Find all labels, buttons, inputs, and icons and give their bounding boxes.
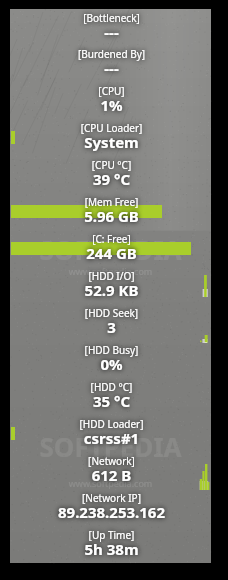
staticText: 52.9 KB <box>11 280 212 300</box>
staticText: SOFTPEDIA <box>10 429 211 464</box>
staticText: [HDD I/O] <box>11 269 212 283</box>
staticText: [CPU] <box>11 84 212 98</box>
staticText: 3 <box>11 317 212 337</box>
staticText: [Mem Free] <box>11 195 212 209</box>
staticText: [CPU °C] <box>11 158 212 172</box>
staticText: [CPU Loader] <box>11 121 212 135</box>
staticText: 89.238.253.162 <box>11 502 212 522</box>
staticText: [Bottleneck] <box>11 11 212 25</box>
staticText: [Network IP] <box>11 491 212 505</box>
staticText: www.softpedia.com <box>10 477 211 489</box>
staticText: 39 °C <box>11 169 212 189</box>
staticText: System <box>11 132 212 152</box>
staticText: [Network] <box>11 454 212 468</box>
staticText: 5.96 GB <box>11 206 212 226</box>
staticText: --- <box>11 22 212 42</box>
staticText: [C: Free] <box>11 232 212 246</box>
staticText: 612 B <box>11 465 212 485</box>
staticText: [HDD Loader] <box>11 417 212 431</box>
staticText: [Burdened By] <box>11 47 212 61</box>
button[interactable]: SOFTPEDIA <box>10 9 211 563</box>
staticText: [HDD °C] <box>11 380 212 394</box>
staticText: [HDD Busy] <box>11 343 212 357</box>
staticText: [HDD Seek] <box>11 306 212 320</box>
staticText: www.softpedia.com <box>10 265 211 277</box>
staticText: 0% <box>11 354 212 374</box>
staticText: SOFTPEDIA <box>10 232 211 267</box>
staticText: 35 °C <box>11 391 212 411</box>
staticText: 244 GB <box>11 243 212 263</box>
staticText: 1% <box>11 95 212 115</box>
staticText: 5h 38m <box>11 539 212 559</box>
staticText: --- <box>11 58 212 78</box>
staticText: [Up Time] <box>11 528 212 542</box>
staticText: csrss#1 <box>11 428 212 448</box>
